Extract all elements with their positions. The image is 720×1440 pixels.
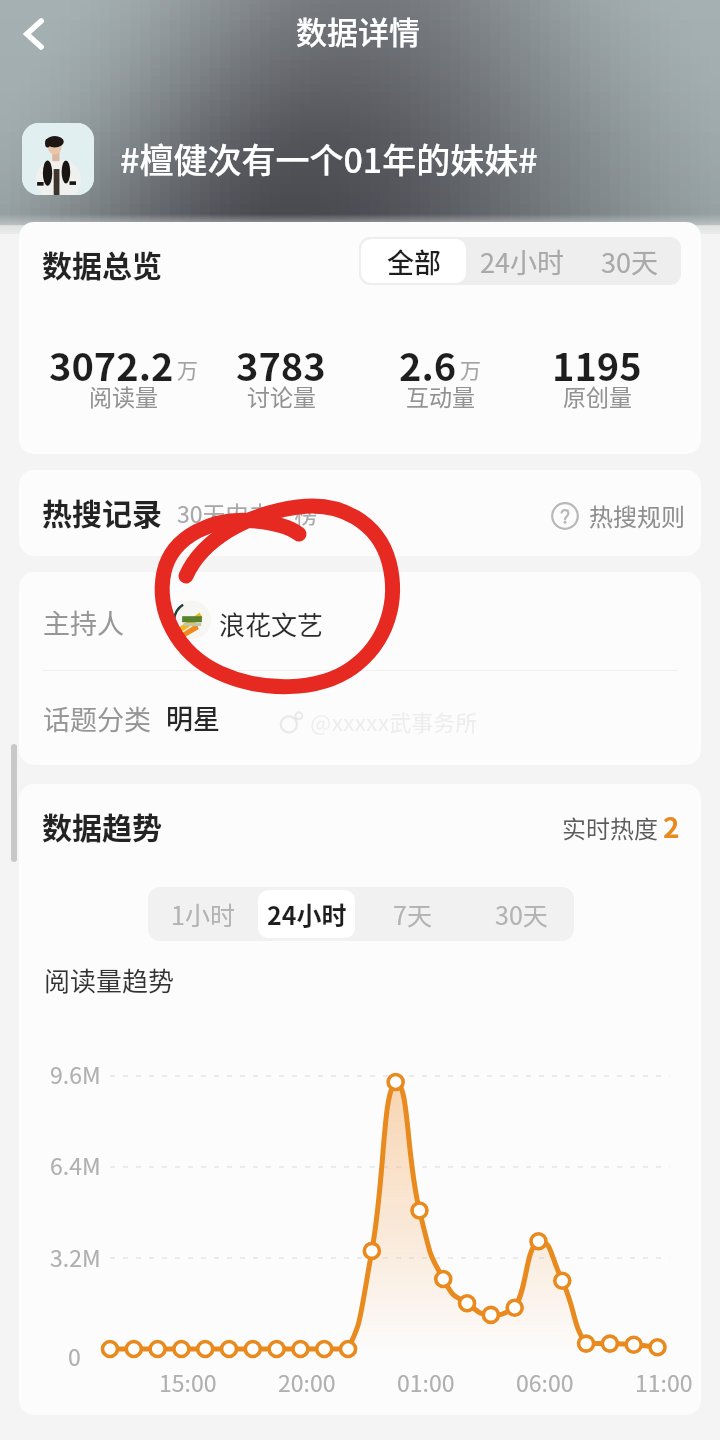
- button[interactable]: 热搜规则: [551, 498, 685, 533]
- staticText: 30天内未上榜: [177, 496, 318, 529]
- staticText: 万: [460, 354, 481, 384]
- staticText: 1195: [552, 337, 642, 392]
- staticText: 讨论量: [247, 379, 316, 412]
- staticText: 24小时: [267, 896, 347, 932]
- staticText: 数据详情: [296, 8, 420, 53]
- staticText: 0: [68, 1339, 81, 1372]
- staticText: 热搜记录: [42, 490, 162, 533]
- staticText: 24小时: [480, 242, 564, 281]
- staticText: 原创量: [563, 379, 632, 412]
- button[interactable]: 30天: [577, 237, 681, 285]
- staticText: 万: [177, 354, 198, 384]
- button[interactable]: 全部: [361, 239, 466, 283]
- staticText: 2.6: [399, 337, 457, 392]
- staticText: 3.2M: [50, 1240, 101, 1273]
- staticText: 30天: [495, 896, 548, 932]
- staticText: 3072.2: [49, 337, 174, 392]
- button[interactable]: 7天: [355, 887, 469, 941]
- staticText: 互动量: [406, 379, 475, 412]
- staticText: 1小时: [171, 896, 235, 932]
- staticText: 话题分类: [43, 699, 151, 738]
- staticText: 全部: [387, 242, 441, 281]
- staticText: 30天: [601, 242, 658, 281]
- staticText: 01:00: [397, 1365, 455, 1398]
- button[interactable]: Back: [2, 2, 66, 66]
- staticText: 9.6M: [50, 1057, 101, 1090]
- button[interactable]: 24小时: [258, 890, 355, 938]
- button[interactable]: 30天: [469, 887, 574, 941]
- staticText: 热搜规则: [589, 498, 685, 533]
- button[interactable]: 24小时: [466, 237, 577, 285]
- staticText: @xxxxx武事务所: [310, 705, 478, 737]
- staticText: 阅读量趋势: [44, 961, 175, 999]
- staticText: 浪花文艺: [219, 605, 324, 643]
- button[interactable]: 1小时: [148, 887, 258, 941]
- staticText: 3783: [236, 337, 326, 392]
- staticText: 实时热度: [562, 810, 658, 845]
- staticText: #檀健次有一个01年的妹妹#: [120, 134, 538, 183]
- staticText: 主持人: [43, 603, 124, 642]
- staticText: 20:00: [278, 1365, 336, 1398]
- staticText: 6.4M: [50, 1148, 101, 1181]
- staticText: 数据趋势: [42, 804, 162, 847]
- staticText: 2: [663, 806, 680, 847]
- staticText: 15:00: [159, 1365, 217, 1398]
- staticText: 明星: [166, 698, 220, 737]
- staticText: 数据总览: [42, 242, 162, 285]
- staticText: 7天: [393, 896, 432, 932]
- staticText: 阅读量: [89, 379, 158, 412]
- staticText: 11:00: [635, 1365, 693, 1398]
- staticText: 06:00: [516, 1365, 574, 1398]
